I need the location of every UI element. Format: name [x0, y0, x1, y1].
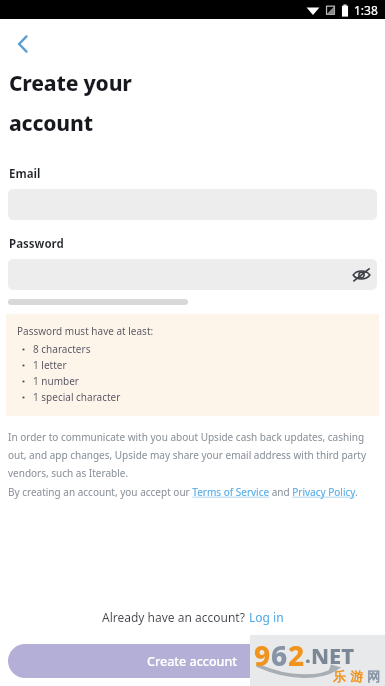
staticText: 游: [350, 668, 363, 683]
staticText: .: [305, 642, 311, 669]
staticText: Log in: [249, 609, 284, 625]
staticText: Create account: [147, 653, 238, 670]
button[interactable]: Back: [6, 27, 40, 61]
staticText: Password: [9, 236, 64, 252]
staticText: Password must have at least:: [17, 324, 154, 338]
button[interactable]: Show password: [8, 259, 377, 290]
staticText: NET: [311, 640, 355, 670]
staticText: 2: [288, 636, 305, 674]
button[interactable]: Create account: [8, 644, 377, 678]
button[interactable]: Already have an account?: [0, 605, 385, 629]
staticText: 6: [271, 636, 288, 674]
staticText: 乐: [333, 668, 346, 683]
staticText: 9: [254, 636, 271, 674]
staticText: In order to communicate with you about U…: [8, 430, 377, 480]
staticText: account: [9, 109, 93, 138]
staticText: 网: [367, 668, 380, 683]
staticText: 1 number: [33, 374, 79, 388]
staticText: 1 letter: [33, 358, 67, 372]
staticText: By creating an account, you accept our T…: [8, 485, 358, 499]
staticText: 1:38: [354, 2, 378, 18]
staticText: 1 special character: [33, 390, 121, 404]
button[interactable]: Show password: [346, 259, 377, 290]
staticText: Email: [9, 166, 41, 182]
staticText: 8 characters: [33, 342, 91, 356]
staticText: Create your: [9, 69, 132, 98]
staticText: Already have an account?: [102, 609, 249, 625]
